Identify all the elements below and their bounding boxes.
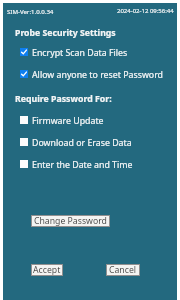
staticText: Allow anyone to reset Password (32, 69, 163, 81)
staticText: Download or Erase Data (32, 137, 132, 149)
staticText: SIM-Ver:1.0.0.34 (7, 7, 54, 15)
staticText: Cancel (109, 264, 137, 276)
button[interactable]: Encrypt Scan Data Files (17, 44, 129, 60)
staticText: Change Password (34, 215, 107, 227)
button[interactable]: Accept (31, 264, 63, 276)
staticText: Enter the Date and Time (32, 159, 133, 171)
button[interactable]: Enter the Date and Time (17, 156, 134, 172)
staticText: 2024-02-12 09:56:44 (117, 7, 174, 15)
button[interactable]: Allow anyone to reset Password (17, 66, 163, 82)
staticText: Require Password For: (15, 93, 112, 105)
button[interactable]: Download or Erase Data (17, 134, 133, 150)
button[interactable]: Cancel (106, 264, 140, 276)
staticText: Firmware Update (32, 115, 104, 127)
button[interactable]: Change Password (31, 215, 110, 227)
staticText: Probe Security Settings (15, 27, 116, 39)
button[interactable]: Firmware Update (17, 112, 105, 128)
staticText: Accept (33, 264, 61, 276)
staticText: Encrypt Scan Data Files (32, 47, 128, 59)
